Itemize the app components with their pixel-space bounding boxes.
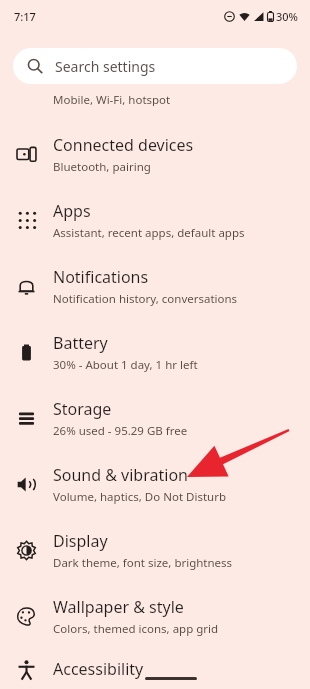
staticText: Storage	[53, 398, 112, 420]
button[interactable]: Sound and vibration	[0, 451, 310, 517]
staticText: Notifications	[53, 266, 149, 288]
staticText: Accessibility	[53, 658, 144, 680]
other: Storage	[16, 408, 37, 429]
other: Wallpaper and style	[16, 606, 37, 627]
button[interactable]: Accessibility	[0, 649, 310, 689]
staticText: Apps	[53, 200, 91, 222]
button[interactable]: Wallpaper and style	[0, 583, 310, 649]
staticText: 30% - About 1 day, 1 hr left	[53, 357, 198, 373]
other: Apps	[17, 210, 37, 230]
other: Sound and vibration	[16, 474, 37, 495]
staticText: Display	[53, 530, 108, 552]
staticText: Volume, haptics, Do Not Disturb	[53, 489, 226, 505]
button[interactable]: Battery	[0, 319, 310, 385]
staticText: Search settings	[55, 57, 156, 76]
staticText: Assistant, recent apps, default apps	[53, 225, 245, 241]
other: Notifications	[16, 276, 37, 297]
staticText: Notification history, conversations	[53, 291, 238, 307]
button[interactable]: Apps	[0, 187, 310, 253]
staticText: 26% used - 95.29 GB free	[53, 423, 188, 439]
other: Connected devices	[16, 144, 37, 165]
staticText: Battery	[53, 332, 108, 354]
other: Battery	[16, 342, 37, 363]
button[interactable]: Display	[0, 517, 310, 583]
staticText: 30%	[276, 9, 298, 24]
staticText: Mobile, Wi-Fi, hotspot	[53, 92, 171, 106]
other: Display	[16, 540, 37, 561]
staticText: Bluetooth, pairing	[53, 159, 151, 175]
button[interactable]: Search settings	[13, 48, 297, 84]
staticText: 7:17	[14, 9, 36, 24]
other: Accessibility	[16, 659, 37, 680]
staticText: Connected devices	[53, 134, 194, 156]
staticText: Colors, themed icons, app grid	[53, 621, 219, 637]
staticText: Sound & vibration	[53, 464, 188, 486]
staticText: Dark theme, font size, brightness	[53, 555, 233, 571]
staticText: Wallpaper & style	[53, 596, 184, 618]
button[interactable]: Notifications	[0, 253, 310, 319]
button[interactable]: Connected devices	[0, 121, 310, 187]
button[interactable]: Storage	[0, 385, 310, 451]
